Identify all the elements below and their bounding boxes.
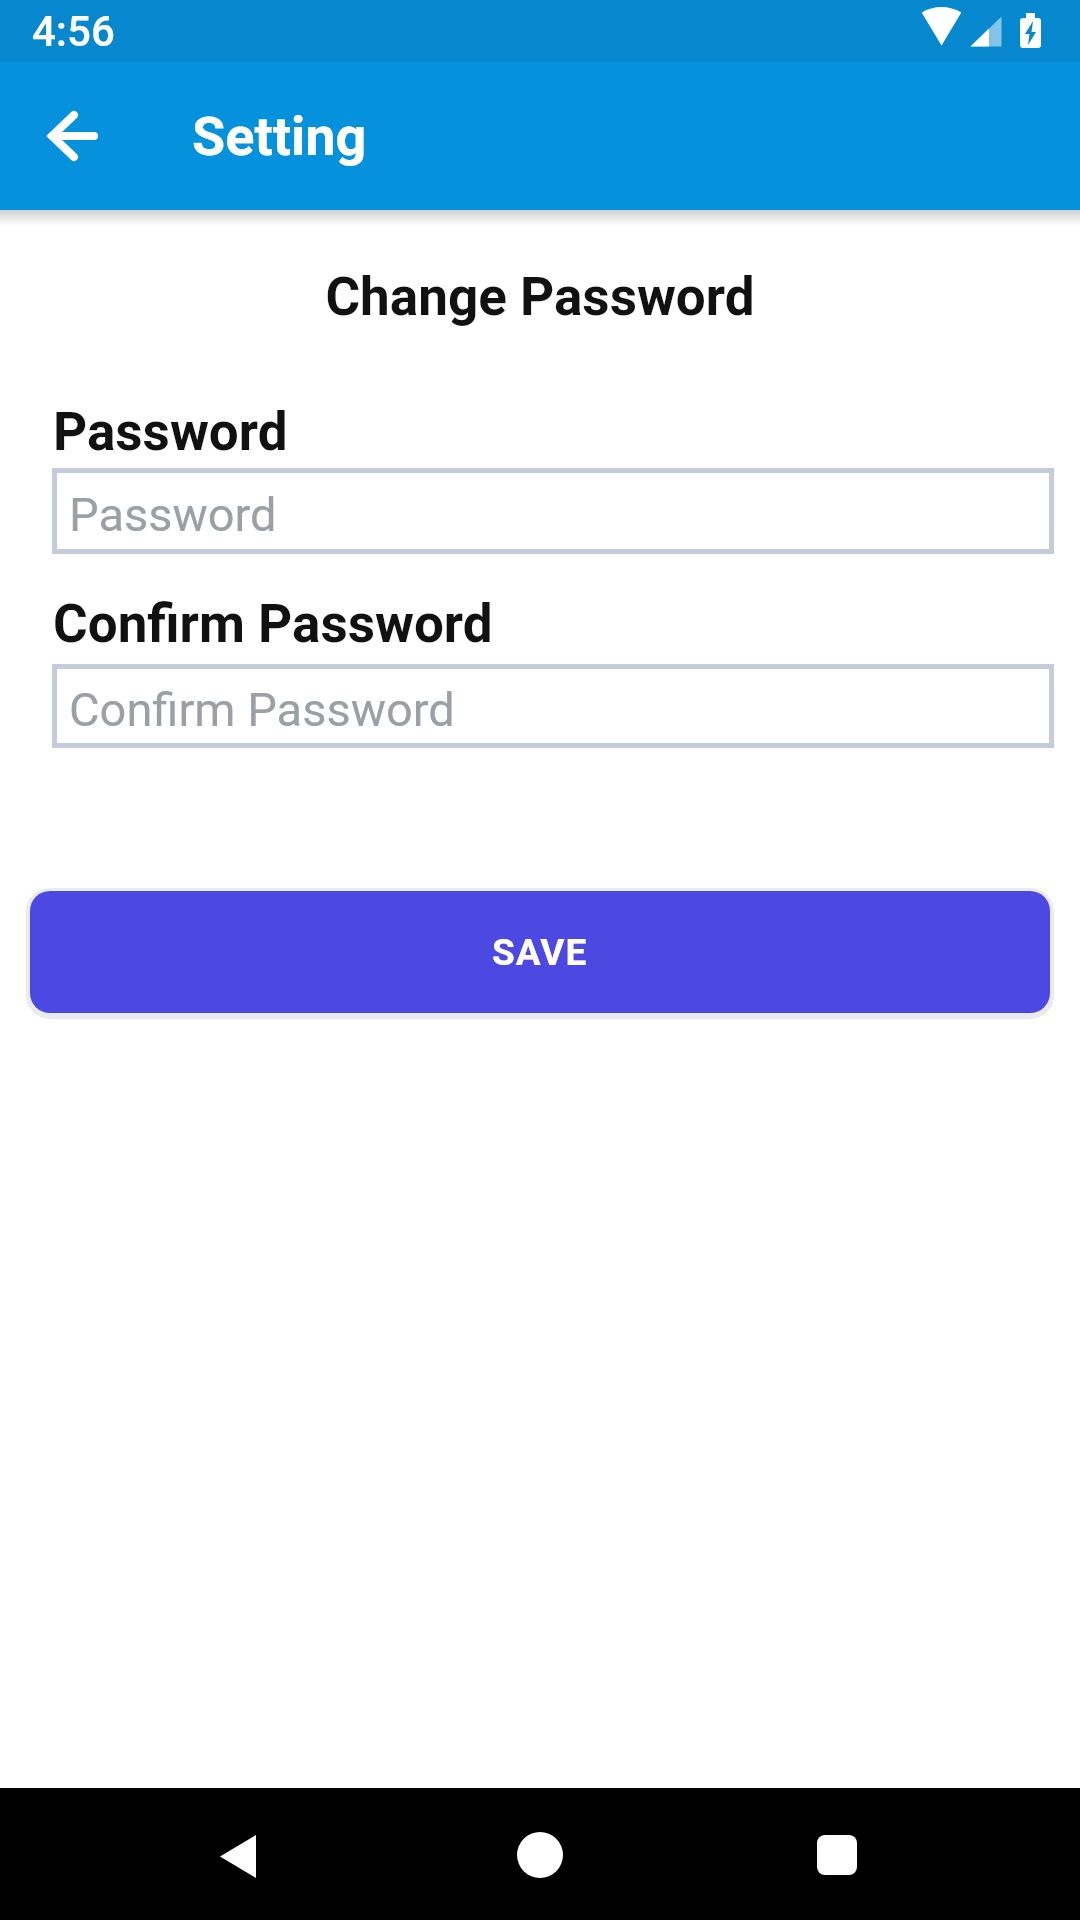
staticText: Confirm Password: [53, 593, 493, 655]
staticText: Change Password: [0, 266, 1080, 328]
button[interactable]: [24, 88, 120, 184]
button[interactable]: [490, 1804, 590, 1904]
staticText: Confirm Password: [69, 682, 455, 737]
button[interactable]: [190, 1804, 290, 1904]
button[interactable]: SAVE: [30, 891, 1050, 1013]
staticText: SAVE: [492, 931, 588, 974]
staticText: Password: [69, 487, 277, 542]
button[interactable]: Confirm Password: [52, 664, 1054, 748]
staticText: Setting: [192, 105, 367, 168]
staticText: Password: [53, 401, 288, 463]
button[interactable]: [787, 1804, 887, 1904]
button[interactable]: Password: [52, 468, 1054, 554]
staticText: 4:56: [32, 7, 115, 56]
